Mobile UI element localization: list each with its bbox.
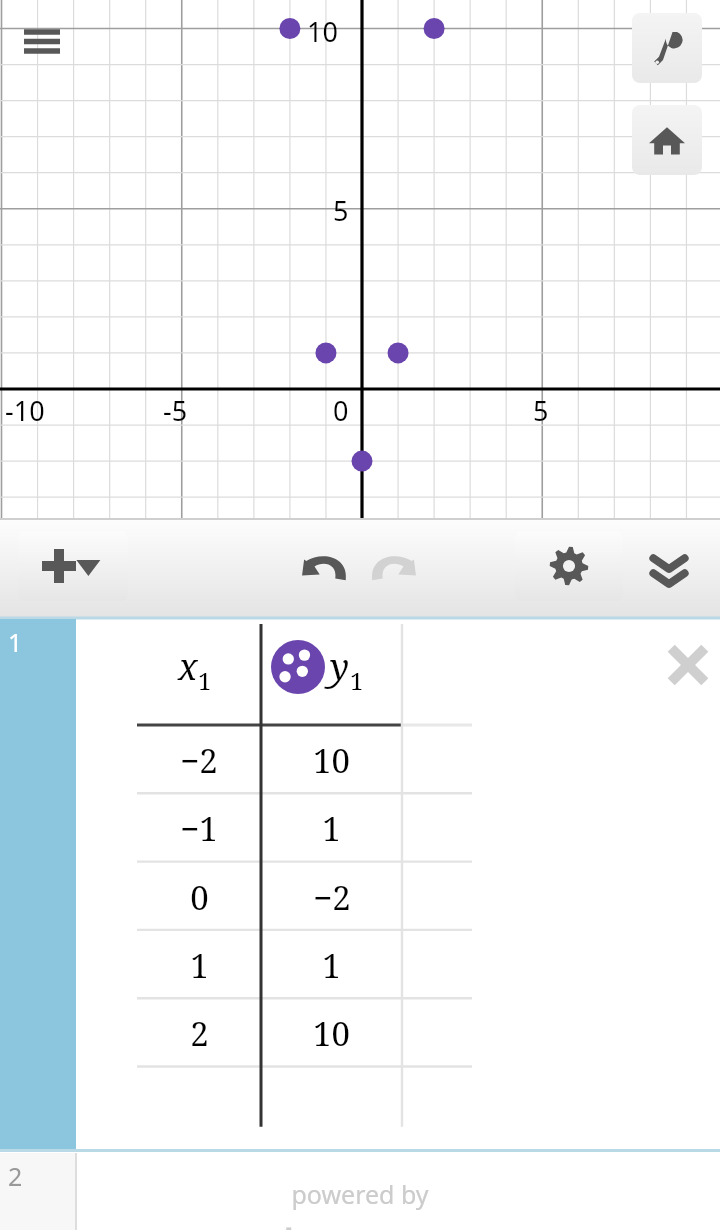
- button[interactable]: 1: [0, 619, 76, 1149]
- button[interactable]: Menu: [20, 20, 64, 64]
- staticText: 0: [190, 875, 209, 920]
- staticText: x: [178, 642, 198, 691]
- button[interactable]: Collapse: [638, 547, 700, 595]
- staticText: 0: [333, 392, 349, 429]
- staticText: 10: [313, 738, 350, 783]
- staticText: 1: [8, 625, 23, 659]
- staticText: 2: [190, 1011, 209, 1056]
- staticText: powered by: [291, 1177, 429, 1211]
- staticText: y: [330, 642, 350, 691]
- button[interactable]: [271, 640, 325, 694]
- staticText: −2: [180, 738, 218, 783]
- staticText: 1: [322, 943, 341, 988]
- staticText: 1: [190, 943, 209, 988]
- button[interactable]: Delete: [658, 635, 718, 695]
- staticText: 5: [533, 392, 549, 429]
- staticText: −2: [313, 875, 351, 920]
- staticText: 10: [313, 1011, 350, 1056]
- staticText: 1: [198, 664, 212, 697]
- staticText: −1: [180, 806, 218, 851]
- button[interactable]: 2: [0, 1153, 720, 1230]
- staticText: 10: [307, 13, 338, 50]
- staticText: 2: [8, 1159, 23, 1193]
- staticText: 5: [333, 192, 349, 229]
- staticText: 1: [350, 664, 364, 697]
- button[interactable]: Default view: [632, 105, 702, 175]
- button[interactable]: Redo: [360, 547, 422, 591]
- button[interactable]: Zoom tools: [632, 13, 702, 83]
- button[interactable]: Settings: [515, 531, 623, 601]
- button[interactable]: Add item: [18, 531, 128, 601]
- staticText: -10: [5, 392, 45, 429]
- staticText: 1: [322, 806, 341, 851]
- staticText: -5: [163, 392, 188, 429]
- button[interactable]: Undo: [296, 547, 358, 591]
